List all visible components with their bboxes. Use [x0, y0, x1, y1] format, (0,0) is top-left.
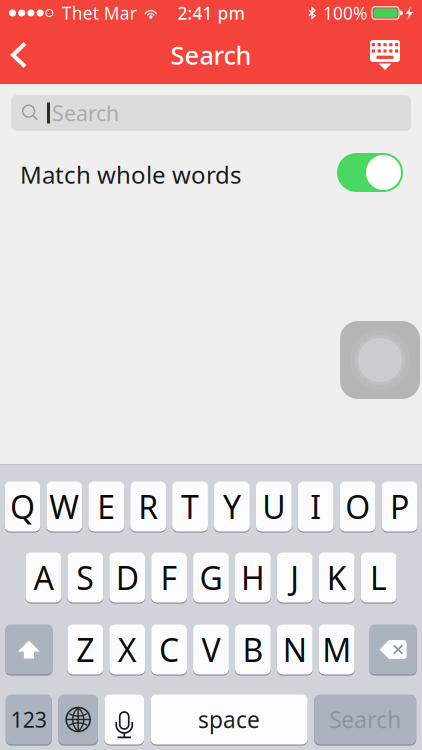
- button[interactable]: K: [319, 552, 355, 603]
- staticText: O: [345, 485, 370, 528]
- staticText: X: [118, 628, 137, 671]
- staticText: space: [198, 704, 260, 734]
- staticText: J: [290, 556, 299, 599]
- button[interactable]: E: [88, 481, 124, 532]
- button[interactable]: D: [109, 552, 145, 603]
- button[interactable]: I: [298, 481, 334, 532]
- staticText: Y: [223, 485, 241, 528]
- button[interactable]: F: [151, 552, 187, 603]
- staticText: Search: [329, 704, 401, 734]
- button[interactable]: Delete: [370, 624, 417, 675]
- button[interactable]: AssistiveTouch: [340, 321, 420, 399]
- staticText: V: [201, 628, 220, 671]
- staticText: B: [242, 628, 263, 671]
- staticText: A: [33, 556, 53, 599]
- staticText: I: [310, 485, 321, 528]
- button[interactable]: X: [109, 624, 145, 675]
- staticText: S: [76, 556, 94, 599]
- button[interactable]: Y: [214, 481, 250, 532]
- button[interactable]: 123: [6, 694, 52, 745]
- staticText: C: [159, 628, 179, 671]
- staticText: Q: [10, 485, 35, 528]
- button[interactable]: N: [277, 624, 313, 675]
- button[interactable]: H: [235, 552, 271, 603]
- button[interactable]: C: [151, 624, 187, 675]
- staticText: Match whole words: [20, 159, 241, 190]
- button[interactable]: W: [46, 481, 82, 532]
- button[interactable]: U: [256, 481, 292, 532]
- button[interactable]: Next keyboard: [58, 694, 98, 745]
- button[interactable]: Dictation: [104, 694, 144, 745]
- staticText: K: [327, 556, 347, 599]
- button[interactable]: M: [319, 624, 355, 675]
- button[interactable]: S: [67, 552, 103, 603]
- button[interactable]: Shift: [5, 624, 52, 675]
- staticText: 123: [11, 705, 47, 734]
- staticText: H: [241, 556, 265, 599]
- button[interactable]: B: [235, 624, 271, 675]
- button[interactable]: L: [361, 552, 396, 603]
- staticText: G: [199, 556, 222, 599]
- staticText: T: [181, 485, 199, 528]
- staticText: F: [161, 556, 178, 599]
- button[interactable]: J: [277, 552, 313, 603]
- staticText: R: [138, 485, 158, 528]
- staticText: L: [370, 556, 387, 599]
- staticText: U: [262, 485, 285, 528]
- button[interactable]: Match whole words: [337, 155, 403, 194]
- button[interactable]: O: [340, 481, 375, 532]
- staticText: 2:41 pm: [177, 1, 244, 24]
- button[interactable]: Q: [4, 481, 40, 532]
- staticText: Thet Mar: [62, 1, 137, 24]
- button[interactable]: Back: [0, 31, 55, 79]
- button[interactable]: P: [382, 481, 417, 532]
- staticText: E: [97, 485, 115, 528]
- staticText: N: [283, 628, 307, 671]
- staticText: P: [390, 485, 409, 528]
- button[interactable]: G: [193, 552, 229, 603]
- staticText: Search: [52, 99, 119, 127]
- staticText: Z: [76, 628, 94, 671]
- staticText: 100%: [323, 1, 367, 24]
- button[interactable]: R: [130, 481, 166, 532]
- staticText: Search: [170, 38, 251, 72]
- button[interactable]: Search: [314, 694, 416, 745]
- staticText: D: [116, 556, 139, 599]
- staticText: W: [49, 485, 79, 528]
- button[interactable]: V: [193, 624, 229, 675]
- button[interactable]: Z: [67, 624, 103, 675]
- button[interactable]: T: [172, 481, 208, 532]
- button[interactable]: Hide keyboard: [356, 31, 422, 79]
- staticText: M: [322, 628, 351, 671]
- button[interactable]: A: [25, 552, 61, 603]
- button[interactable]: space: [151, 694, 308, 745]
